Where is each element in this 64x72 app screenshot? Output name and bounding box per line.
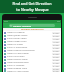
button[interactable]: Surau Nurul Iman	[3, 55, 61, 58]
staticText: Mosque around you	[21, 28, 44, 31]
staticText: 2.0 km	[53, 44, 59, 46]
staticText: 3.3 km	[53, 53, 59, 55]
staticText: Masjid Al-Falah Damai	[7, 52, 51, 55]
button[interactable]: Surau Ar-Rahman	[3, 64, 61, 67]
staticText: 1.6 km	[53, 41, 59, 43]
staticText: 5.1 km	[53, 65, 59, 67]
staticText: Nearby Mosque	[13, 24, 32, 27]
staticText: Find and Get Direction	[12, 1, 52, 6]
staticText: Masjid Jamek Sungai	[7, 34, 51, 37]
button[interactable]: Masjid Jamek Sungai	[3, 34, 61, 37]
button[interactable]: Masjid Tuanku Mizan	[3, 58, 61, 61]
button[interactable]: Surau Taman Melati	[3, 37, 61, 40]
staticText: Masjid Saidina Umar	[7, 67, 51, 70]
staticText: 0.9 km	[53, 35, 59, 37]
staticText: Masjid Al-Hidayah	[7, 31, 51, 34]
button[interactable]: Search mosque	[3, 23, 61, 28]
staticText: 6.0 km	[53, 70, 59, 72]
button[interactable]: Masjid Kampung Baru	[3, 61, 61, 64]
staticText: to Nearby Mosque	[16, 7, 49, 12]
button[interactable]: Masjid Wilayah Persekutuan	[3, 49, 61, 52]
staticText: 5.6 km	[53, 68, 59, 70]
staticText: Surau Taman Melati	[7, 37, 51, 40]
staticText: Surau Ar-Rahman	[7, 64, 51, 67]
button[interactable]: Masjid Al-Falah Damai	[3, 52, 61, 55]
staticText: Surau Al-Ikhlas Bukit	[7, 46, 51, 49]
staticText: 1.2 km	[53, 38, 59, 40]
button[interactable]: Masjid Al-Amin Taman	[3, 70, 61, 72]
button[interactable]: Masjid Saidina Umar	[3, 67, 61, 70]
staticText: Masjid Wilayah Persekutuan	[7, 49, 51, 52]
staticText: Masjid As-Salam	[7, 43, 51, 46]
staticText: 4.2 km	[53, 59, 59, 61]
staticText: Surau Nurul Iman	[7, 55, 51, 58]
staticText: 3.8 km	[53, 56, 59, 58]
button[interactable]: Surau Al-Ikhlas Bukit	[3, 46, 61, 49]
button[interactable]: Masjid Al-Hidayah	[3, 31, 61, 34]
staticText: Masjid Tuanku Mizan	[7, 58, 51, 61]
staticText: Masjid Kampung Baru	[7, 61, 51, 64]
staticText: 2.9 km	[53, 50, 59, 52]
staticText: 2.4 km	[53, 47, 59, 49]
staticText: Masjid Negeri Putra	[7, 40, 51, 43]
button[interactable]: Masjid Negeri Putra	[3, 40, 61, 43]
staticText: Masjid Al-Amin Taman	[7, 70, 51, 72]
button[interactable]: Masjid As-Salam	[3, 43, 61, 46]
staticText: 4.7 km	[53, 62, 59, 64]
staticText: 0.4 km	[53, 32, 59, 34]
